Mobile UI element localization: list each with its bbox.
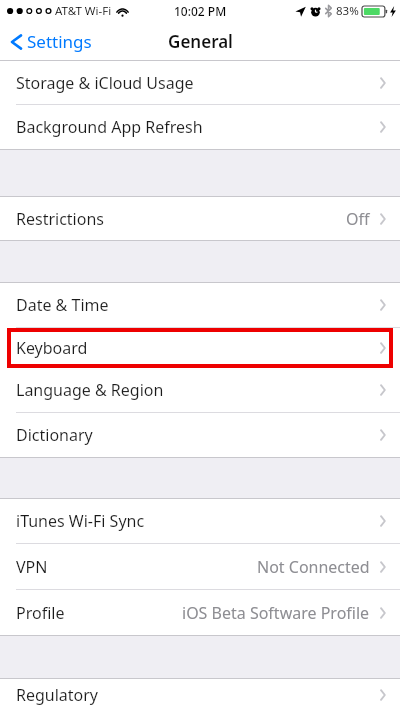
button[interactable]: Profile [0, 590, 400, 635]
staticText: Off [346, 208, 370, 230]
staticText: Storage & iCloud Usage [16, 72, 194, 94]
staticText: 10:02 PM [174, 3, 227, 19]
button[interactable]: Language & Region [0, 368, 400, 413]
staticText: General [168, 30, 233, 53]
staticText: Not Connected [257, 556, 370, 578]
staticText: Settings [27, 30, 92, 53]
button[interactable]: iTunes Wi-Fi Sync [0, 499, 400, 544]
button[interactable]: Keyboard [7, 328, 393, 368]
staticText: iTunes Wi-Fi Sync [16, 510, 145, 532]
staticText: Profile [16, 602, 65, 624]
staticText: 83% [336, 3, 359, 19]
button[interactable]: Storage & iCloud Usage [0, 61, 400, 105]
button[interactable]: Background App Refresh [0, 105, 400, 149]
staticText: Background App Refresh [16, 116, 203, 138]
button[interactable]: Date & Time [0, 283, 400, 328]
staticText: Date & Time [16, 294, 109, 316]
staticText: Keyboard [16, 337, 88, 359]
staticText: Regulatory [16, 684, 99, 706]
staticText: VPN [16, 556, 48, 578]
staticText: Restrictions [16, 208, 104, 230]
staticText: Dictionary [16, 424, 93, 446]
button[interactable]: Regulatory [0, 679, 400, 711]
staticText: AT&T Wi-Fi [55, 3, 112, 19]
staticText: iOS Beta Software Profile [182, 602, 370, 624]
staticText: Language & Region [16, 379, 164, 401]
button[interactable]: VPN [0, 544, 400, 590]
button[interactable]: Restrictions [0, 197, 400, 240]
button[interactable]: Dictionary [0, 413, 400, 457]
button[interactable]: Settings [8, 26, 94, 57]
